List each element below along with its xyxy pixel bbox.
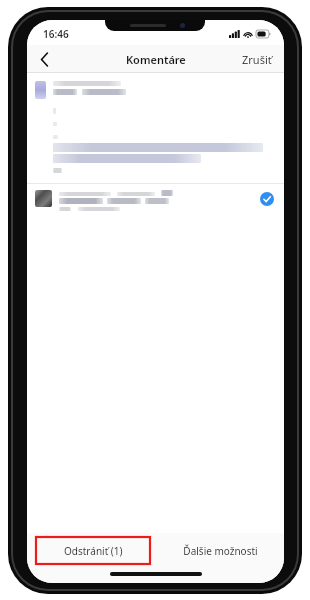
button[interactable]: [27, 143, 284, 163]
staticText: Ďalšie možnosti: [183, 544, 258, 558]
staticText: Zrušiť: [242, 52, 272, 67]
button[interactable]: Ďalšie možnosti: [163, 537, 277, 564]
button[interactable]: Zrušiť: [230, 45, 284, 73]
button[interactable]: Selected: [27, 184, 284, 211]
staticText: Komentáre: [126, 52, 186, 67]
staticText: 16:46: [43, 27, 69, 41]
button[interactable]: [27, 81, 284, 99]
staticText: Odstrániť (1): [64, 544, 123, 558]
button[interactable]: Back: [27, 45, 61, 73]
button[interactable]: Selected: [260, 192, 274, 206]
button[interactable]: Odstrániť (1): [36, 537, 150, 564]
